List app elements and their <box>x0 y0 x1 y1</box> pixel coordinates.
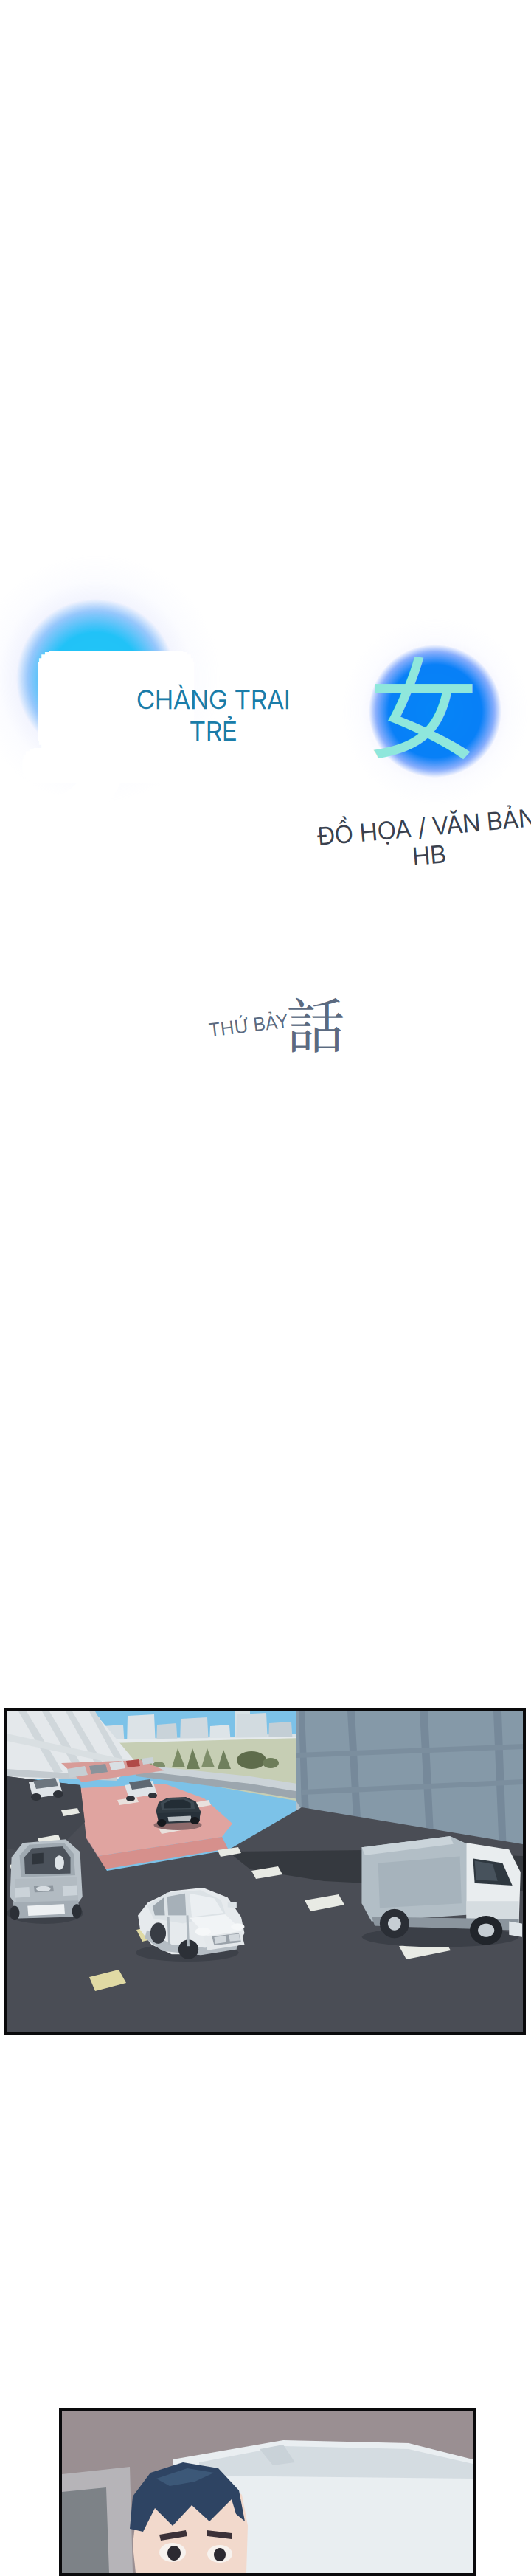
staticText: 男 <box>12 583 204 862</box>
staticText: ĐỒ HỌA / VĂN BẢN <box>318 812 531 842</box>
staticText: THỨ BẢY <box>208 1014 289 1037</box>
staticText: 男 <box>24 601 216 880</box>
staticText: 男 <box>31 591 223 870</box>
staticText: 男 <box>27 583 220 862</box>
staticText: 男 <box>15 580 208 860</box>
staticText: TRẺ <box>190 716 237 747</box>
staticText: 男 <box>20 596 212 875</box>
staticText: 男 <box>23 595 216 874</box>
staticText: 男 <box>23 587 216 866</box>
staticText: 男 <box>25 591 218 870</box>
staticText: 男 <box>8 591 201 870</box>
staticText: 男 <box>14 591 206 870</box>
staticText: 男 <box>24 580 216 860</box>
staticText: 男 <box>30 587 222 866</box>
staticText: 男 <box>27 599 220 878</box>
staticText: 男 <box>12 599 204 878</box>
staticText: 男 <box>15 601 208 880</box>
staticText: CHÀNG TRAI <box>136 684 290 715</box>
staticText: 男 <box>20 580 212 859</box>
staticText: 女 <box>368 623 478 782</box>
staticText: 男 <box>16 595 208 874</box>
staticText: 男 <box>9 595 202 874</box>
staticText: 話 <box>286 979 345 1064</box>
staticText: 男 <box>30 595 222 874</box>
staticText: 男 <box>9 587 202 866</box>
staticText: 男 <box>20 602 212 881</box>
staticText: 男 <box>20 585 212 864</box>
staticText: HB <box>411 840 444 870</box>
staticText: 男 <box>20 591 212 870</box>
staticText: 男 <box>16 587 208 866</box>
